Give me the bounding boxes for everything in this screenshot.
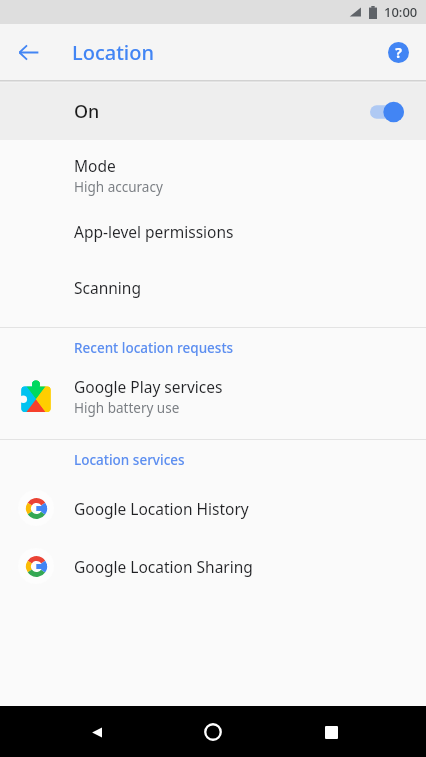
staticText: Google Play services — [74, 376, 223, 397]
button[interactable]: Navigate up — [8, 32, 48, 72]
staticText: Google Location Sharing — [74, 556, 253, 577]
button[interactable]: App-level permissions — [0, 203, 426, 259]
staticText: On — [74, 99, 100, 124]
button[interactable]: Google Location History — [0, 479, 426, 537]
button[interactable]: Recent apps — [309, 710, 353, 754]
button[interactable]: Mode — [0, 147, 426, 203]
staticText: 10:00 — [384, 3, 418, 21]
staticText: Google Location History — [74, 498, 249, 519]
staticText: High battery use — [74, 399, 180, 417]
button[interactable]: Back — [75, 710, 119, 754]
staticText: Location — [72, 39, 154, 66]
button[interactable]: On — [0, 83, 426, 140]
staticText: Mode — [74, 155, 116, 176]
button[interactable]: Scanning — [0, 259, 426, 315]
staticText: App-level permissions — [74, 221, 234, 242]
button[interactable]: Google Play services — [0, 367, 426, 425]
staticText: High accuracy — [74, 178, 163, 196]
staticText: Scanning — [74, 277, 141, 298]
button[interactable]: Help — [378, 32, 418, 72]
button[interactable]: Google Location Sharing — [0, 537, 426, 595]
staticText: ? — [395, 43, 402, 62]
button[interactable]: Home — [191, 710, 235, 754]
staticText: Location services — [74, 451, 185, 469]
staticText: Recent location requests — [74, 339, 234, 357]
